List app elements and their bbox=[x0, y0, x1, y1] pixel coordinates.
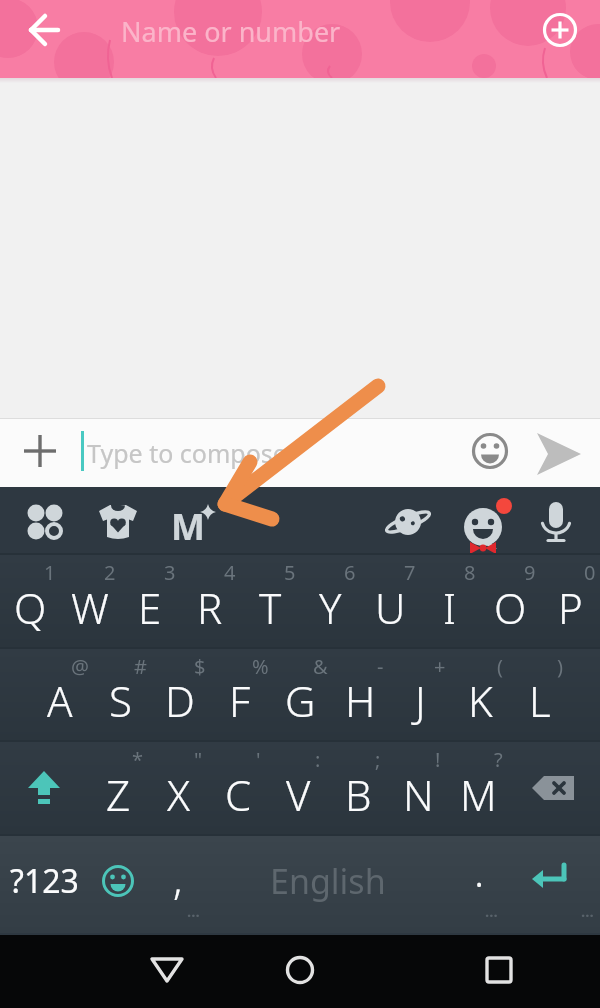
button[interactable]: & bbox=[270, 649, 330, 740]
button[interactable] bbox=[528, 494, 584, 550]
staticText: G bbox=[285, 672, 316, 729]
staticText: : bbox=[315, 746, 321, 773]
staticText: K bbox=[468, 672, 493, 729]
button[interactable] bbox=[16, 427, 64, 475]
staticText: L bbox=[529, 672, 551, 729]
button[interactable]: 0 bbox=[540, 555, 600, 647]
staticText: ) bbox=[557, 653, 563, 680]
button[interactable]: , bbox=[148, 836, 208, 933]
button[interactable] bbox=[452, 491, 514, 553]
staticText: I bbox=[443, 579, 457, 636]
button[interactable]: 4 bbox=[180, 555, 240, 647]
button[interactable]: ; bbox=[328, 742, 388, 834]
staticText: E bbox=[138, 579, 162, 636]
staticText: 5 bbox=[284, 559, 296, 586]
staticText: P bbox=[558, 579, 583, 636]
staticText: Q bbox=[14, 579, 47, 636]
button[interactable] bbox=[88, 836, 148, 933]
staticText: 4 bbox=[224, 559, 236, 586]
staticText: X bbox=[167, 766, 190, 823]
button[interactable] bbox=[508, 742, 600, 834]
staticText: 3 bbox=[164, 559, 176, 586]
staticText: ? bbox=[494, 746, 503, 773]
button[interactable] bbox=[536, 6, 584, 54]
staticText: 0 bbox=[584, 559, 596, 586]
staticText: ... bbox=[187, 901, 200, 921]
staticText: 1 bbox=[44, 559, 56, 586]
staticText: ; bbox=[375, 746, 381, 773]
button[interactable] bbox=[0, 935, 233, 1008]
staticText: H bbox=[345, 672, 376, 729]
staticText: Type to compose bbox=[87, 436, 287, 470]
button[interactable]: . bbox=[448, 836, 510, 933]
button[interactable] bbox=[90, 494, 146, 550]
staticText: English bbox=[270, 858, 386, 904]
button[interactable] bbox=[0, 742, 88, 834]
button[interactable] bbox=[466, 427, 514, 475]
staticText: # bbox=[134, 653, 147, 680]
button[interactable]: ? bbox=[448, 742, 508, 834]
button[interactable]: : bbox=[268, 742, 328, 834]
button[interactable]: " bbox=[148, 742, 208, 834]
button[interactable] bbox=[13, 0, 77, 60]
button[interactable]: @ bbox=[30, 649, 90, 740]
staticText: N bbox=[403, 766, 434, 823]
button[interactable]: ?123 bbox=[0, 836, 88, 933]
staticText: 7 bbox=[404, 559, 416, 586]
button[interactable]: - bbox=[330, 649, 390, 740]
staticText: ' bbox=[256, 746, 261, 773]
staticText: - bbox=[377, 653, 384, 680]
staticText: Z bbox=[106, 766, 131, 823]
staticText: R bbox=[197, 579, 223, 636]
staticText: ?123 bbox=[10, 859, 79, 903]
button[interactable]: ) bbox=[510, 649, 570, 740]
button[interactable]: 7 bbox=[360, 555, 420, 647]
staticText: J bbox=[415, 672, 426, 729]
staticText: M bbox=[171, 502, 205, 551]
button[interactable] bbox=[17, 494, 73, 550]
button[interactable]: 3 bbox=[120, 555, 180, 647]
button[interactable]: ( bbox=[450, 649, 510, 740]
button[interactable] bbox=[380, 494, 436, 550]
button[interactable] bbox=[530, 427, 584, 481]
staticText: $ bbox=[194, 653, 206, 680]
staticText: , bbox=[173, 850, 183, 907]
staticText: M bbox=[460, 766, 497, 823]
staticText: B bbox=[345, 766, 372, 823]
staticText: F bbox=[229, 672, 251, 729]
staticText: 6 bbox=[344, 559, 356, 586]
staticText: S bbox=[109, 672, 132, 729]
staticText: T bbox=[259, 579, 282, 636]
staticText: V bbox=[286, 766, 311, 823]
button[interactable]: * bbox=[88, 742, 148, 834]
staticText: " bbox=[194, 746, 203, 773]
button[interactable]: + bbox=[390, 649, 450, 740]
staticText: C bbox=[225, 766, 252, 823]
staticText: + bbox=[434, 653, 446, 680]
button[interactable]: 2 bbox=[60, 555, 120, 647]
staticText: ! bbox=[435, 746, 441, 773]
button[interactable]: 1 bbox=[0, 555, 60, 647]
staticText: 2 bbox=[104, 559, 116, 586]
button[interactable] bbox=[233, 935, 367, 1008]
staticText: A bbox=[47, 672, 73, 729]
button[interactable]: ! bbox=[388, 742, 448, 834]
button[interactable]: 5 bbox=[240, 555, 300, 647]
staticText: % bbox=[252, 653, 269, 680]
staticText: ... bbox=[485, 901, 498, 921]
button[interactable] bbox=[367, 935, 600, 1008]
button[interactable]: 8 bbox=[420, 555, 480, 647]
button[interactable]: # bbox=[90, 649, 150, 740]
staticText: 8 bbox=[464, 559, 476, 586]
staticText: ( bbox=[497, 653, 503, 680]
staticText: O bbox=[494, 579, 527, 636]
button[interactable]: 9 bbox=[480, 555, 540, 647]
button[interactable]: % bbox=[210, 649, 270, 740]
button[interactable]: English bbox=[208, 836, 448, 933]
button[interactable]: ' bbox=[208, 742, 268, 834]
button[interactable]: 6 bbox=[300, 555, 360, 647]
button[interactable]: ... bbox=[510, 836, 600, 933]
button[interactable]: M bbox=[162, 494, 222, 554]
button[interactable]: $ bbox=[150, 649, 210, 740]
staticText: @ bbox=[71, 653, 89, 680]
